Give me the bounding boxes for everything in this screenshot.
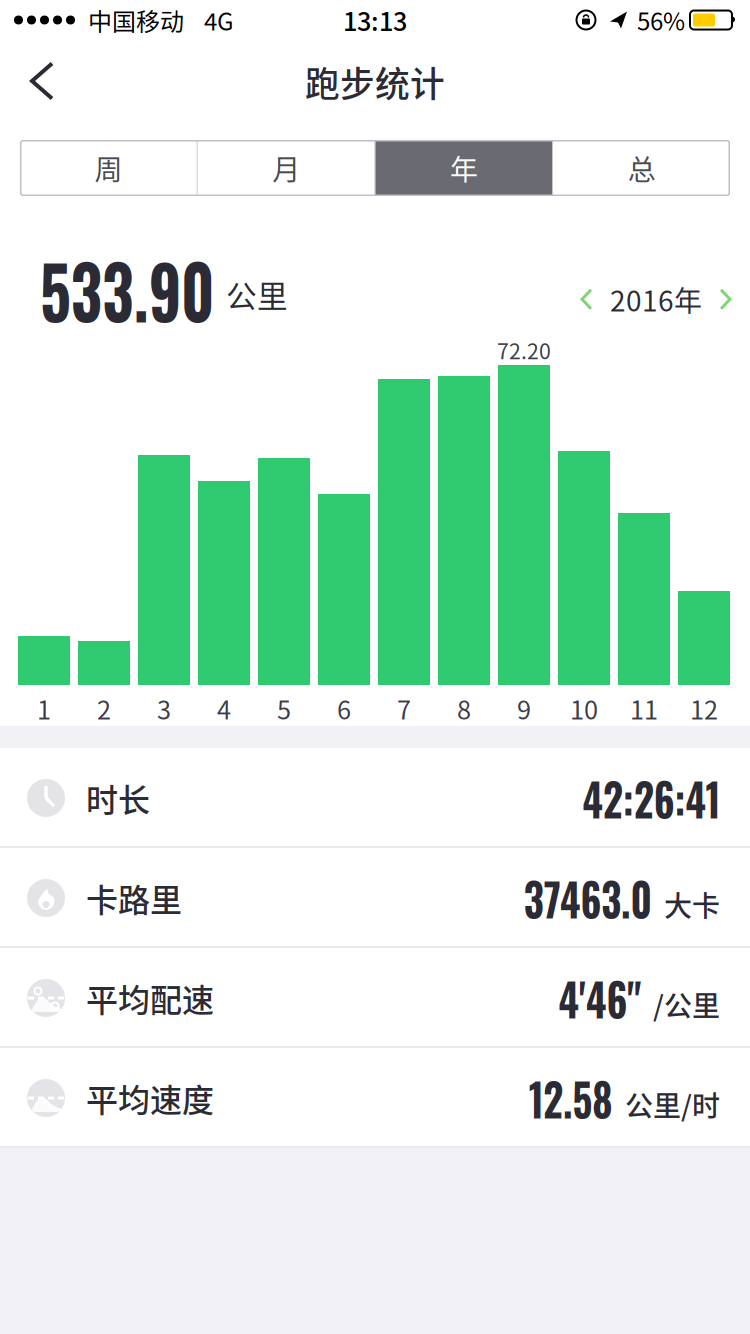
staticText: 12.58 xyxy=(515,1064,613,1132)
staticText: 卡路里 xyxy=(86,875,182,921)
staticText: 中国移动 xyxy=(88,3,184,37)
staticText: 跑步统计 xyxy=(305,57,445,107)
button[interactable]: 下一年 xyxy=(713,282,738,317)
staticText: 总 xyxy=(628,148,656,188)
staticText: 5 xyxy=(277,690,291,727)
staticText: 周 xyxy=(94,148,122,188)
staticText: 平均速度 xyxy=(86,1075,214,1121)
staticText: 3 xyxy=(157,690,171,727)
button[interactable]: 总 xyxy=(553,140,730,196)
staticText: 533.90 xyxy=(40,235,250,344)
staticText: 年 xyxy=(450,148,478,188)
staticText: 4 xyxy=(217,690,231,727)
staticText: 12 xyxy=(690,690,718,727)
staticText: 公里 xyxy=(226,272,288,317)
staticText: 10 xyxy=(570,690,598,727)
staticText: 11 xyxy=(630,690,658,727)
button[interactable]: 年 xyxy=(375,140,552,196)
staticText: 56% xyxy=(637,3,685,37)
staticText: 公里/时 xyxy=(625,1084,720,1124)
staticText: 平均配速 xyxy=(86,975,214,1021)
button[interactable]: 返回 xyxy=(0,40,72,128)
staticText: 大卡 xyxy=(664,884,720,924)
staticText: 7 xyxy=(397,690,411,727)
button[interactable]: 月 xyxy=(198,140,375,196)
staticText: /公里 xyxy=(653,984,720,1024)
staticText: 4G xyxy=(204,3,234,37)
staticText: 月 xyxy=(272,148,300,188)
staticText: 72.20 xyxy=(497,335,551,365)
staticText: 13:13 xyxy=(343,2,407,38)
staticText: 时长 xyxy=(86,775,150,821)
staticText: 4'46" xyxy=(545,964,641,1032)
staticText: 42:26:41 xyxy=(560,764,720,832)
staticText: 2016年 xyxy=(610,279,702,319)
button[interactable]: 上一年 xyxy=(574,282,599,317)
staticText: 1 xyxy=(37,690,51,727)
staticText: 6 xyxy=(337,690,351,727)
staticText: 2 xyxy=(97,690,111,727)
staticText: 37463.0 xyxy=(503,864,652,932)
staticText: 8 xyxy=(457,690,471,727)
button[interactable]: 周 xyxy=(20,140,197,196)
staticText: 9 xyxy=(517,690,531,727)
